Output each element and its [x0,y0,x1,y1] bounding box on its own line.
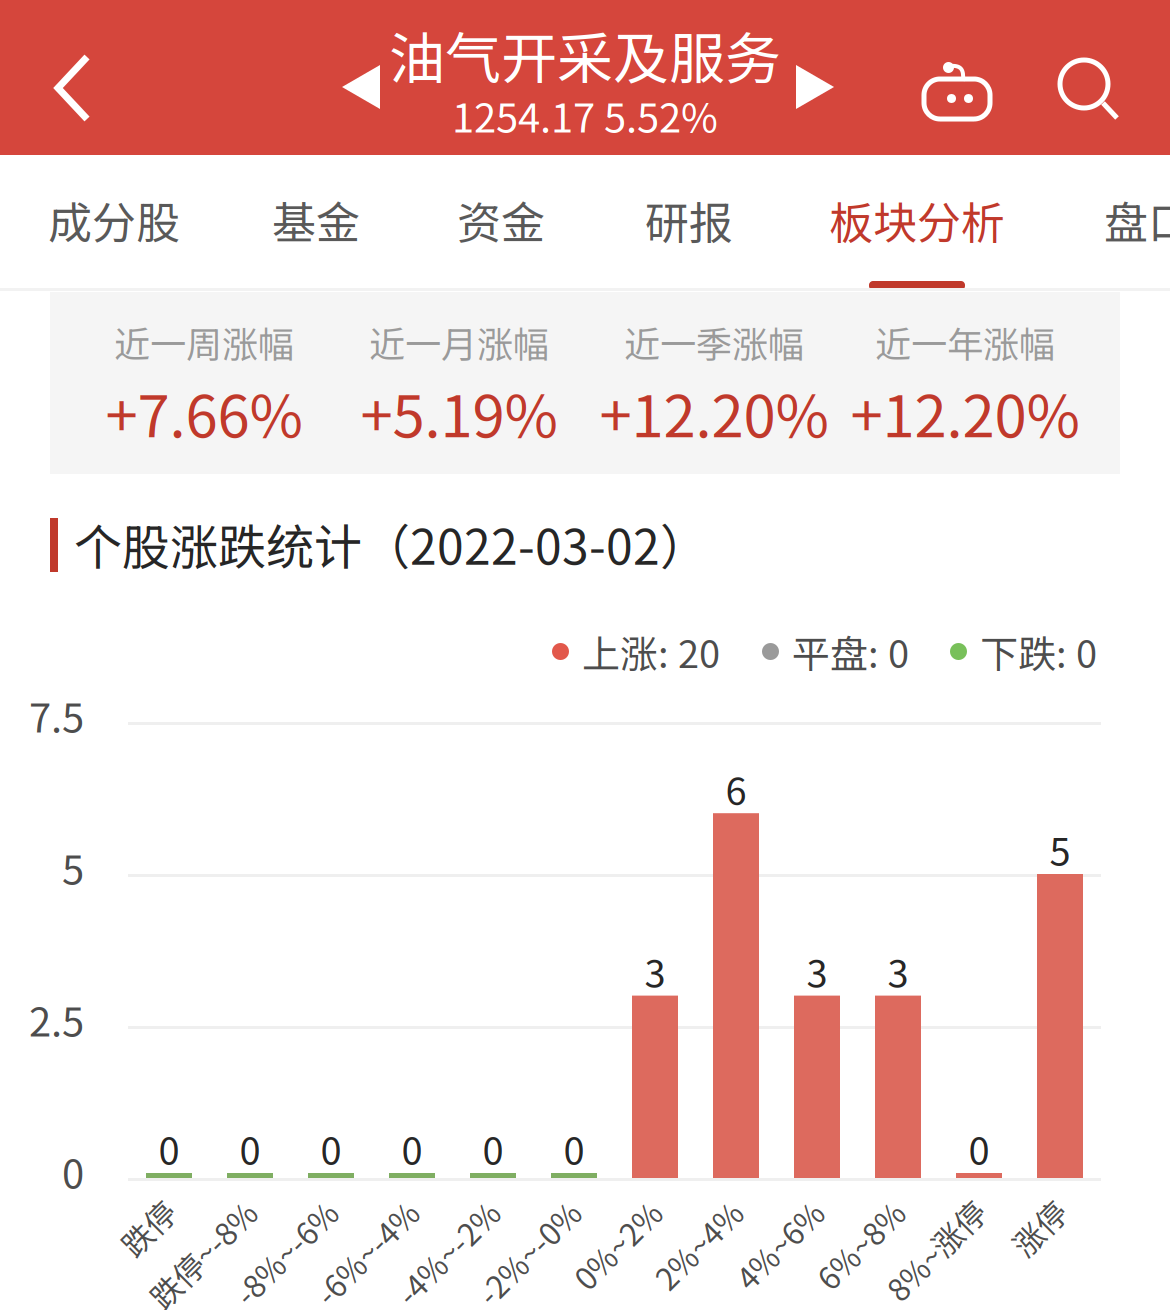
staticText: -6%~-4% [266,1190,397,1235]
staticText: +12.20% [599,370,828,454]
staticText: 下跌: 0 [980,624,1097,679]
staticText: 板块分析 [829,188,1005,252]
staticText: 近一季涨幅 [624,316,804,368]
staticText: 成分股 [48,188,180,252]
button[interactable]: Previous sector [342,65,380,109]
button[interactable]: 成分股 [0,155,244,292]
staticText: 0 [482,1121,503,1176]
staticText: 5 [1049,822,1070,877]
staticText: 4%~6% [693,1190,802,1235]
button[interactable]: 基金 [186,155,446,292]
staticText: 7.5 [29,686,84,744]
button[interactable]: 资金 [371,155,631,292]
staticText: 3 [887,944,908,999]
staticText: +5.19% [360,370,557,454]
button[interactable]: Search [1060,60,1120,120]
staticText: 盘口 [1104,188,1170,252]
staticText: 近一年涨幅 [875,316,1055,368]
staticText: 油气开采及服务 [389,14,781,95]
staticText: 跌停~-8% [99,1190,235,1235]
button[interactable]: 板块分析 [787,155,1047,292]
staticText: 0 [158,1121,179,1176]
staticText: 6 [725,761,746,816]
staticText: 0%~2% [531,1190,640,1235]
staticText: 近一月涨幅 [369,316,549,368]
staticText: 2.5 [29,990,84,1048]
staticText: 2%~4% [612,1190,721,1235]
button[interactable]: Assistant [921,41,993,121]
staticText: 0 [239,1121,260,1176]
staticText: 涨停 [983,1190,1045,1235]
staticText: 6%~8% [774,1190,883,1235]
staticText: 1254.17 5.52% [452,86,718,144]
staticText: 8%~涨停 [839,1190,964,1235]
staticText: 基金 [272,188,360,252]
staticText: 3 [806,944,827,999]
staticText: 资金 [457,188,545,252]
staticText: 0 [401,1121,422,1176]
staticText: 研报 [645,188,733,252]
staticText: 跌停 [92,1190,154,1235]
staticText: -4%~-2% [347,1190,478,1235]
staticText: 近一周涨幅 [114,316,294,368]
button[interactable]: Next sector [796,65,834,109]
staticText: +12.20% [850,370,1079,454]
button[interactable]: 盘口 [1018,155,1170,292]
staticText: 平盘: 0 [792,624,909,679]
staticText: 3 [644,944,665,999]
staticText: 0 [320,1121,341,1176]
staticText: +7.66% [105,370,302,454]
staticText: 0 [968,1121,989,1176]
staticText: 5 [62,838,84,896]
staticText: -2%~-0% [428,1190,559,1235]
staticText: 个股涨跌统计（2022-03-02） [74,509,708,578]
button[interactable]: Back [53,55,95,123]
staticText: 0 [563,1121,584,1176]
staticText: 上涨: 20 [582,624,720,679]
button[interactable]: 研报 [559,155,819,292]
staticText: 0 [62,1142,84,1200]
staticText: -8%~-6% [185,1190,316,1235]
